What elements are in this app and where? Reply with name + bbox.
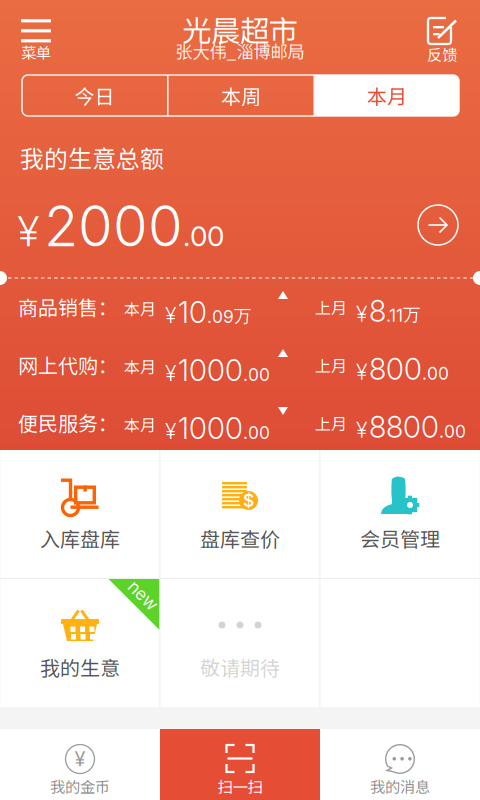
staticText: 张大伟_淄博邮局 [175, 38, 304, 64]
staticText: 敬请期待 [200, 652, 280, 681]
button[interactable]: 查看详情 [418, 205, 458, 245]
staticText: 入库盘库 [40, 523, 120, 552]
staticText: 本月 [124, 413, 156, 436]
button[interactable]: 敬请期待 [160, 579, 319, 707]
staticText: 我的生意 [40, 652, 120, 681]
staticText: .00 [243, 422, 270, 443]
staticText: ¥ [165, 302, 176, 328]
staticText: 上月 [315, 353, 347, 377]
staticText: ¥ [74, 747, 85, 771]
staticText: 我的生意总额 [20, 140, 164, 175]
staticText: 我的金币 [50, 775, 110, 797]
staticText: 上月 [315, 295, 347, 319]
staticText: .00 [439, 421, 466, 442]
staticText: ¥ [356, 417, 367, 443]
button[interactable]: 入库盘库 [0, 450, 159, 578]
staticText: .00 [422, 363, 449, 384]
button[interactable]: 我的生意 [0, 579, 159, 707]
staticText: 反馈 [427, 43, 457, 65]
staticText: new [126, 585, 160, 606]
staticText: 本月 [124, 355, 156, 378]
button[interactable]: 今日 [22, 75, 167, 116]
staticText: 本周 [221, 81, 261, 110]
staticText: 便民服务： [18, 408, 118, 437]
staticText: 2000 [44, 192, 183, 260]
staticText: 菜单 [21, 41, 51, 63]
staticText: 盘库查价 [200, 523, 280, 552]
staticText: 光晨超市 [182, 8, 298, 50]
staticText: ¥ [165, 360, 176, 386]
staticText: ¥ [18, 206, 39, 256]
staticText: 1000 [178, 352, 243, 388]
staticText: ¥ [356, 359, 367, 385]
staticText: 我的消息 [370, 775, 430, 797]
button[interactable]: ¥ [0, 729, 160, 800]
button[interactable]: $ [160, 450, 319, 578]
staticText: 会员管理 [360, 523, 440, 552]
staticText: 上月 [315, 411, 347, 435]
staticText: 本月 [367, 81, 407, 110]
staticText: 10 [178, 294, 207, 330]
button[interactable]: 本月 [315, 75, 459, 116]
staticText: 本月 [124, 297, 156, 320]
button[interactable]: 我的消息 [320, 729, 480, 800]
staticText: 网上代购： [18, 350, 118, 379]
staticText: 1000 [178, 410, 243, 446]
staticText: .11万 [386, 304, 420, 326]
staticText: ¥ [165, 418, 176, 444]
staticText: 今日 [75, 81, 115, 110]
staticText: 800 [369, 351, 422, 387]
staticText: ¥ [356, 301, 367, 327]
staticText: 8800 [369, 409, 439, 445]
staticText: .09万 [207, 305, 251, 327]
staticText: .00 [183, 219, 224, 253]
button[interactable]: 会员管理 [320, 450, 479, 578]
button[interactable]: 本周 [168, 75, 313, 116]
staticText: 商品销售： [18, 292, 118, 321]
staticText: 扫一扫 [217, 775, 262, 797]
button[interactable]: 扫一扫 [160, 729, 320, 800]
staticText: 8 [369, 293, 386, 329]
staticText: $ [243, 490, 254, 511]
staticText: .00 [243, 364, 270, 385]
button[interactable]: 菜单 [6, 19, 66, 65]
button[interactable]: 反馈 [414, 16, 470, 64]
